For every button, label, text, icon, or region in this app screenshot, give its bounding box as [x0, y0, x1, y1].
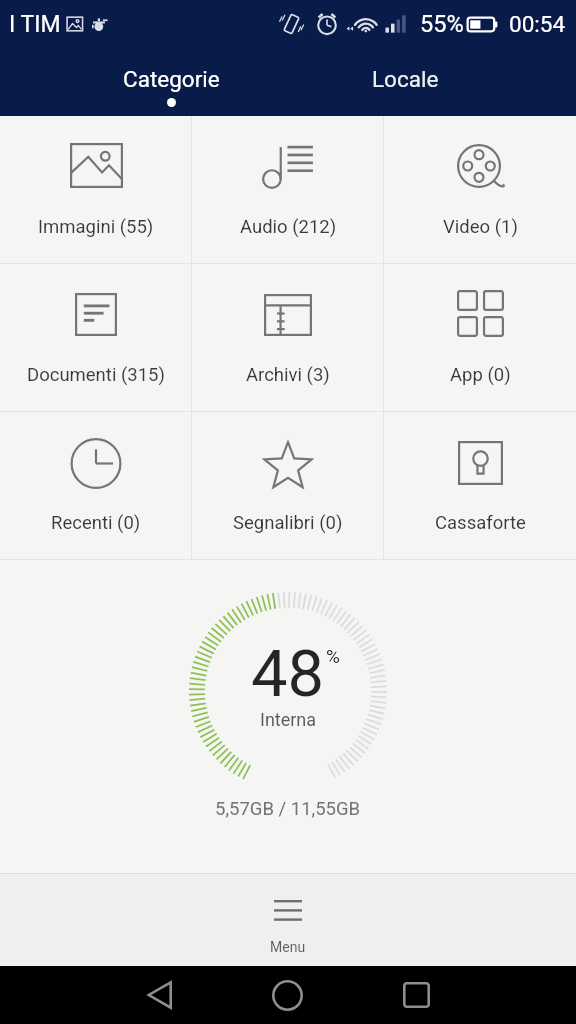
- staticText: 55%: [420, 10, 464, 38]
- button[interactable]: App (0): [384, 264, 576, 411]
- staticText: 48: [251, 636, 325, 712]
- staticText: 00:54: [509, 11, 566, 37]
- staticText: Segnalibri (0): [233, 512, 343, 534]
- staticText: Audio (212): [240, 216, 337, 238]
- staticText: Interna: [260, 709, 317, 730]
- staticText: Immagini (55): [38, 216, 154, 238]
- staticText: Archivi (3): [246, 364, 330, 386]
- staticText: Menu: [270, 939, 306, 955]
- staticText: App (0): [450, 364, 511, 386]
- staticText: Documenti (315): [27, 364, 165, 386]
- button[interactable]: Documenti (315): [0, 264, 192, 411]
- button[interactable]: Archivi (3): [192, 264, 384, 411]
- button[interactable]: Locale: [288, 48, 522, 116]
- staticText: %: [326, 645, 340, 667]
- staticText: Video (1): [443, 216, 518, 238]
- button[interactable]: Immagini (55): [0, 116, 192, 263]
- staticText: 5,57GB / 11,55GB: [215, 798, 361, 820]
- button[interactable]: Cassaforte: [384, 412, 576, 559]
- button[interactable]: Recenti (0): [0, 412, 192, 559]
- button[interactable]: Back: [128, 966, 191, 1024]
- button[interactable]: Recents: [385, 966, 448, 1024]
- button[interactable]: Home: [256, 966, 319, 1024]
- staticText: Locale: [372, 66, 439, 92]
- button[interactable]: Segnalibri (0): [192, 412, 384, 559]
- button[interactable]: Video (1): [384, 116, 576, 263]
- staticText: Recenti (0): [51, 512, 141, 534]
- staticText: Cassaforte: [435, 512, 526, 534]
- button[interactable]: Menu: [0, 873, 576, 966]
- button[interactable]: Categorie: [54, 48, 288, 116]
- staticText: Categorie: [123, 66, 220, 92]
- staticText: I TIM: [9, 11, 61, 38]
- button[interactable]: Audio (212): [192, 116, 384, 263]
